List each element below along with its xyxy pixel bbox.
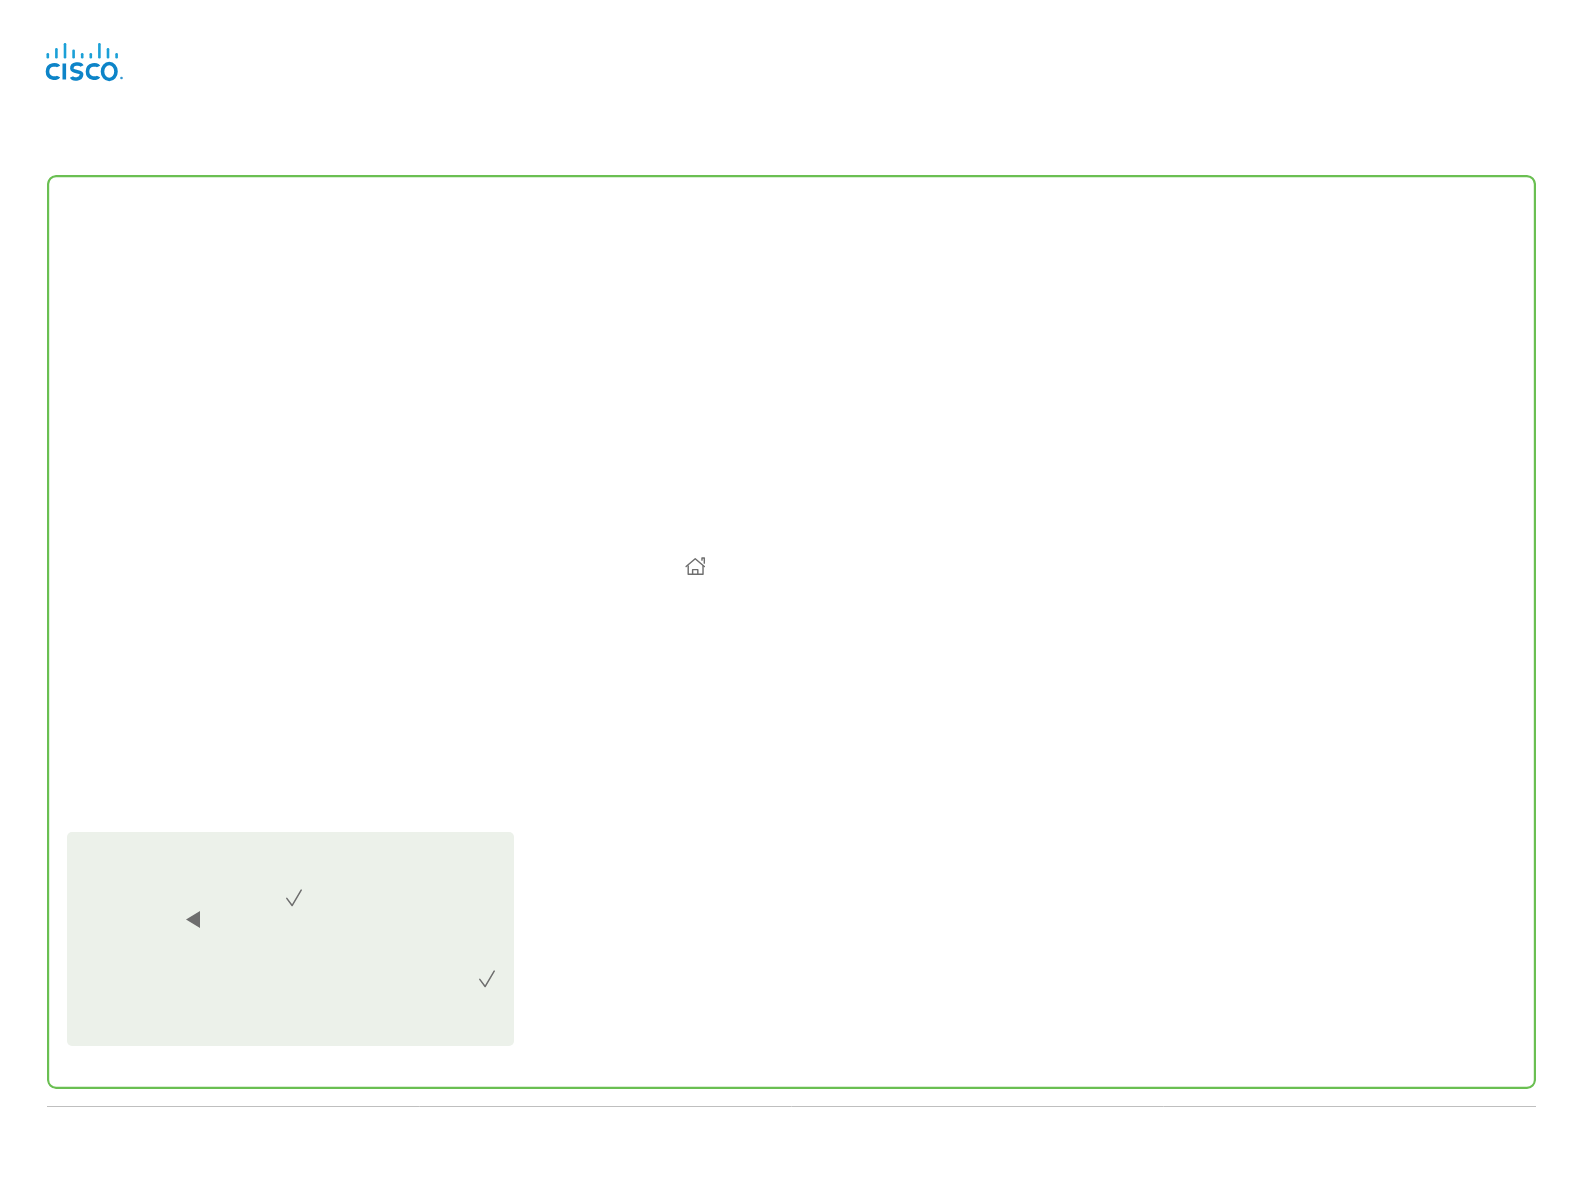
button[interactable]: Home xyxy=(683,553,709,579)
button[interactable]: Home xyxy=(47,175,1536,1089)
button[interactable]: Cisco xyxy=(44,40,130,82)
button[interactable]: Previous xyxy=(186,911,200,928)
button[interactable]: Previous xyxy=(67,832,514,1046)
